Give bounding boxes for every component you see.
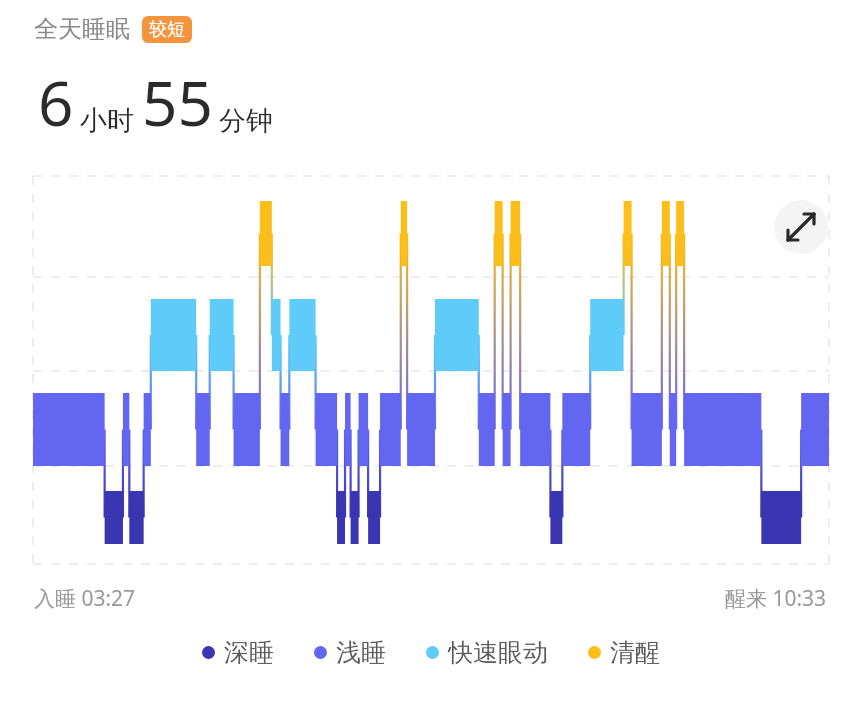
staticText: 较短 xyxy=(149,18,185,41)
staticText: 清醒 xyxy=(610,637,660,668)
staticText: 6 xyxy=(38,60,74,144)
staticText: 入睡 03:27 xyxy=(34,584,136,613)
staticText: 深睡 xyxy=(224,637,274,668)
staticText: 55 xyxy=(142,60,213,144)
staticText: 浅睡 xyxy=(336,637,386,668)
button[interactable]: 浅睡 xyxy=(314,635,386,670)
staticText: 醒来 10:33 xyxy=(725,584,827,613)
staticText: 分钟 xyxy=(219,104,273,138)
staticText: 快速眼动 xyxy=(448,637,548,668)
staticText: 全天睡眠 xyxy=(34,14,130,44)
button[interactable]: 快速眼动 xyxy=(426,635,548,670)
button[interactable]: 清醒 xyxy=(588,635,660,670)
button[interactable]: Expand chart xyxy=(774,200,828,254)
button[interactable]: 深睡 xyxy=(202,635,274,670)
button[interactable]: 较短 xyxy=(142,16,192,43)
staticText: 小时 xyxy=(80,104,134,138)
